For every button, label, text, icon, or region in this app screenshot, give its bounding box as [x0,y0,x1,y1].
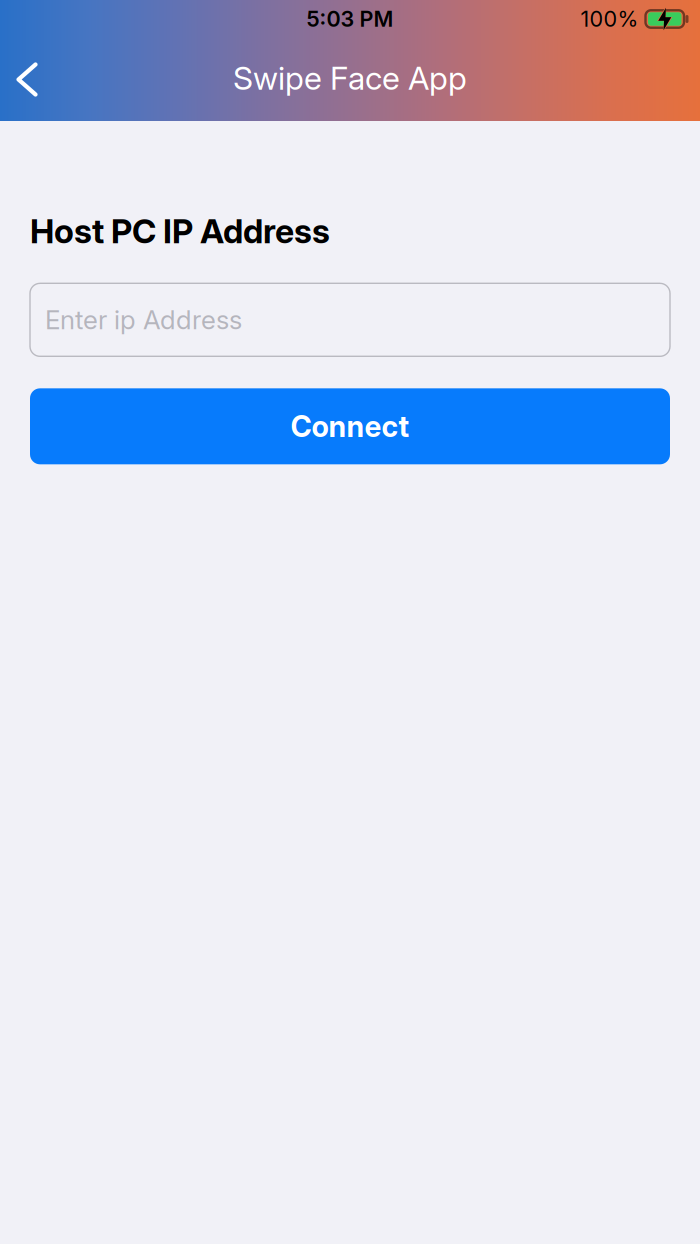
button[interactable]: Connect [30,388,670,464]
staticText: Swipe Face App [233,59,467,97]
staticText: 5:03 PM [306,6,393,32]
staticText: 100% [580,6,638,32]
staticText: Connect [290,409,409,444]
staticText: Enter ip Address [45,304,242,336]
staticText: Host PC IP Address [30,211,330,251]
button[interactable]: Back [0,44,55,114]
button[interactable]: Enter ip Address [30,283,670,356]
